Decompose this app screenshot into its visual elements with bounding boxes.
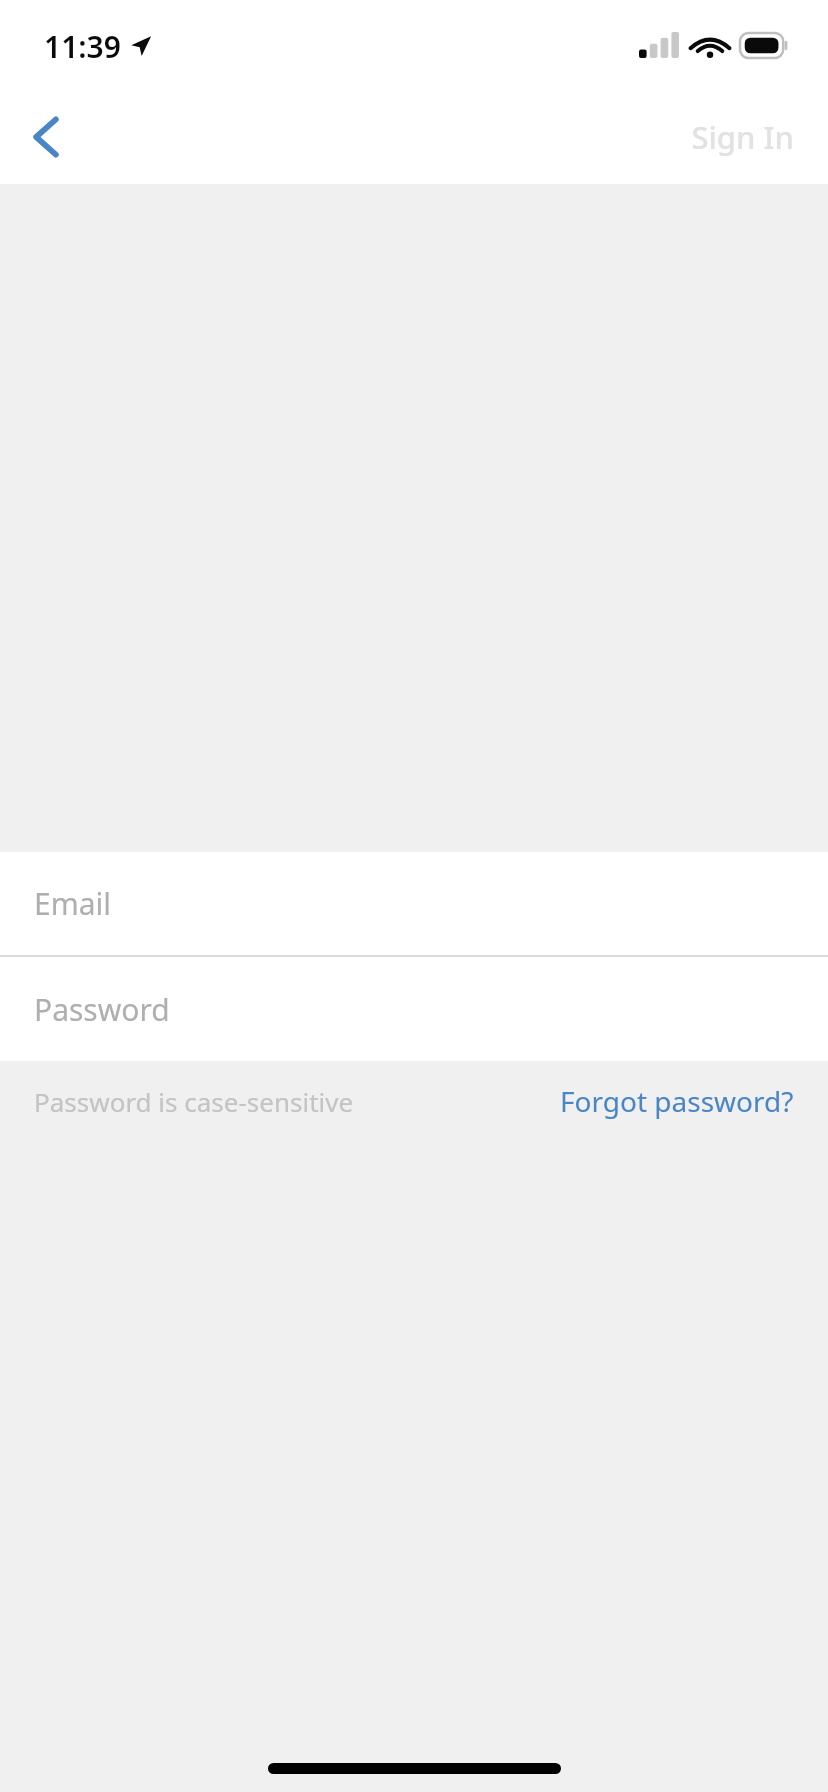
staticText: Password is case-sensitive bbox=[34, 1084, 354, 1119]
button[interactable]: Sign In bbox=[657, 98, 828, 176]
staticText: Password bbox=[34, 989, 170, 1030]
button[interactable]: Password bbox=[0, 957, 828, 1061]
staticText: Sign In bbox=[691, 116, 794, 158]
button[interactable]: Forgot password? bbox=[548, 1074, 828, 1128]
button[interactable]: Email bbox=[0, 852, 828, 955]
staticText: 11:39 bbox=[44, 26, 121, 67]
staticText: Email bbox=[34, 883, 112, 924]
button[interactable]: Back bbox=[0, 90, 96, 184]
staticText: Forgot password? bbox=[560, 1082, 794, 1120]
